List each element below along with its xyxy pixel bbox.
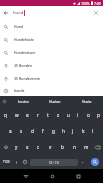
button[interactable]: s <box>16 123 27 139</box>
button[interactable]: Hundesteuer <box>0 46 103 59</box>
button[interactable]: j <box>68 123 78 139</box>
button[interactable]: x <box>22 139 33 155</box>
staticText: q <box>4 112 7 118</box>
button[interactable]: i <box>73 107 83 123</box>
button[interactable]: r <box>33 107 43 123</box>
button[interactable]: hunde <box>0 85 103 96</box>
button[interactable]: e <box>22 107 33 123</box>
button[interactable]: Hundehütte <box>0 33 103 46</box>
button[interactable]: t <box>43 107 53 123</box>
button[interactable]: h <box>58 123 68 139</box>
button[interactable]: Huste <box>71 96 103 107</box>
button[interactable]: o <box>83 107 93 123</box>
button[interactable]: Hund <box>0 20 103 33</box>
button[interactable]: q <box>0 107 11 123</box>
staticText: h <box>62 128 65 134</box>
button[interactable]: 35 Hundeverein <box>0 72 103 85</box>
staticText: z <box>57 112 60 118</box>
staticText: 35 Hunden <box>14 63 32 68</box>
staticText: hund <box>13 10 24 16</box>
button[interactable]: Husten <box>39 96 71 107</box>
staticText: o <box>87 112 90 118</box>
staticText: v <box>49 144 52 150</box>
button[interactable]: . <box>79 155 87 169</box>
button[interactable]: Back <box>13 169 39 183</box>
button[interactable]: u <box>63 107 73 123</box>
staticText: t <box>47 112 49 118</box>
staticText: n <box>73 144 76 150</box>
staticText: x <box>26 144 29 150</box>
staticText: husten <box>18 99 30 104</box>
staticText: 35 Hundeverein <box>14 76 41 81</box>
button[interactable]: ?123 <box>0 155 12 169</box>
button[interactable]: Emoji <box>21 155 29 169</box>
staticText: f <box>42 128 44 134</box>
staticText: c <box>37 144 40 150</box>
button[interactable]: z <box>53 107 63 123</box>
staticText: DE • EN <box>49 161 59 165</box>
staticText: d <box>31 128 34 134</box>
button[interactable]: Back <box>0 6 11 19</box>
button[interactable]: 35 Hunden <box>0 59 103 72</box>
staticText: Hund <box>14 24 24 29</box>
button[interactable]: a <box>5 123 16 139</box>
button[interactable]: n <box>68 139 80 155</box>
staticText: a <box>9 128 12 134</box>
staticText: e <box>26 112 29 118</box>
staticText: l <box>92 128 94 134</box>
button[interactable]: Recent apps <box>65 169 91 183</box>
staticText: hunde <box>14 88 25 93</box>
button[interactable]: DE • EN <box>30 159 78 166</box>
staticText: Hundesteuer <box>14 50 36 55</box>
button[interactable]: Search <box>87 155 103 169</box>
button[interactable]: v <box>44 139 56 155</box>
staticText: u <box>67 112 70 118</box>
staticText: j <box>72 128 74 134</box>
staticText: b <box>61 144 64 150</box>
staticText: , <box>16 158 18 164</box>
staticText: r <box>37 112 39 118</box>
button[interactable]: p <box>93 107 103 123</box>
staticText: g <box>52 128 55 134</box>
staticText: s <box>20 128 23 134</box>
button[interactable]: f <box>38 123 48 139</box>
staticText: y <box>15 144 18 150</box>
button[interactable]: Backspace <box>92 139 103 155</box>
staticText: k <box>82 128 85 134</box>
button[interactable]: l <box>88 123 98 139</box>
button[interactable]: c <box>33 139 44 155</box>
button[interactable]: d <box>27 123 38 139</box>
button[interactable]: k <box>78 123 88 139</box>
button[interactable]: Home <box>39 169 65 183</box>
button[interactable]: , <box>12 155 21 169</box>
button[interactable]: Clear search <box>89 6 103 19</box>
button[interactable]: Shift <box>0 139 11 155</box>
staticText: w <box>15 112 19 118</box>
button[interactable]: y <box>11 139 22 155</box>
staticText: 7:00 <box>94 1 101 6</box>
button[interactable]: g <box>48 123 58 139</box>
staticText: ?123 <box>3 160 10 164</box>
staticText: 100% <box>81 1 90 6</box>
button[interactable]: husten <box>8 96 39 107</box>
staticText: . <box>82 158 84 164</box>
button[interactable]: m <box>80 139 92 155</box>
staticText: m <box>84 144 89 150</box>
button[interactable]: b <box>56 139 68 155</box>
button[interactable]: Show more suggestions <box>0 96 8 107</box>
button[interactable]: w <box>11 107 22 123</box>
staticText: Hundehütte <box>14 37 35 42</box>
staticText: Husten <box>49 99 61 104</box>
staticText: p <box>97 112 100 118</box>
staticText: Huste <box>82 99 92 104</box>
staticText: i <box>77 112 79 118</box>
